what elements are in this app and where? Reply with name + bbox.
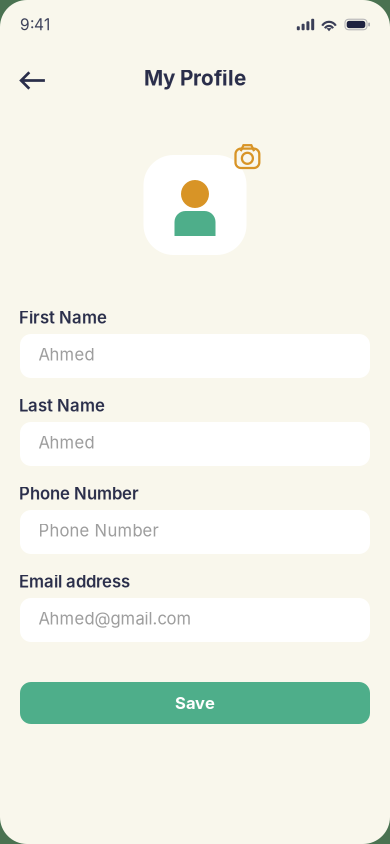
button[interactable]: Back bbox=[10, 58, 54, 102]
staticText: Ahmed bbox=[38, 432, 94, 453]
staticText: Ahmed bbox=[38, 344, 94, 365]
staticText: Ahmed@gmail.com bbox=[38, 608, 191, 629]
staticText: Last Name bbox=[19, 395, 105, 416]
button[interactable]: Ahmed bbox=[20, 334, 370, 378]
staticText: Phone Number bbox=[19, 483, 139, 504]
button[interactable]: Change photo bbox=[235, 144, 259, 168]
button[interactable]: Profile photo bbox=[143, 155, 246, 255]
staticText: My Profile bbox=[144, 65, 246, 90]
button[interactable]: Phone Number bbox=[20, 510, 370, 554]
button[interactable]: Ahmed@gmail.com bbox=[20, 598, 370, 642]
button[interactable]: Ahmed bbox=[20, 422, 370, 466]
staticText: Email address bbox=[19, 571, 130, 592]
staticText: First Name bbox=[19, 307, 107, 328]
staticText: Phone Number bbox=[38, 520, 158, 541]
staticText: 9:41 bbox=[20, 15, 50, 34]
button[interactable]: Save bbox=[20, 682, 370, 724]
staticText: Save bbox=[175, 693, 215, 713]
